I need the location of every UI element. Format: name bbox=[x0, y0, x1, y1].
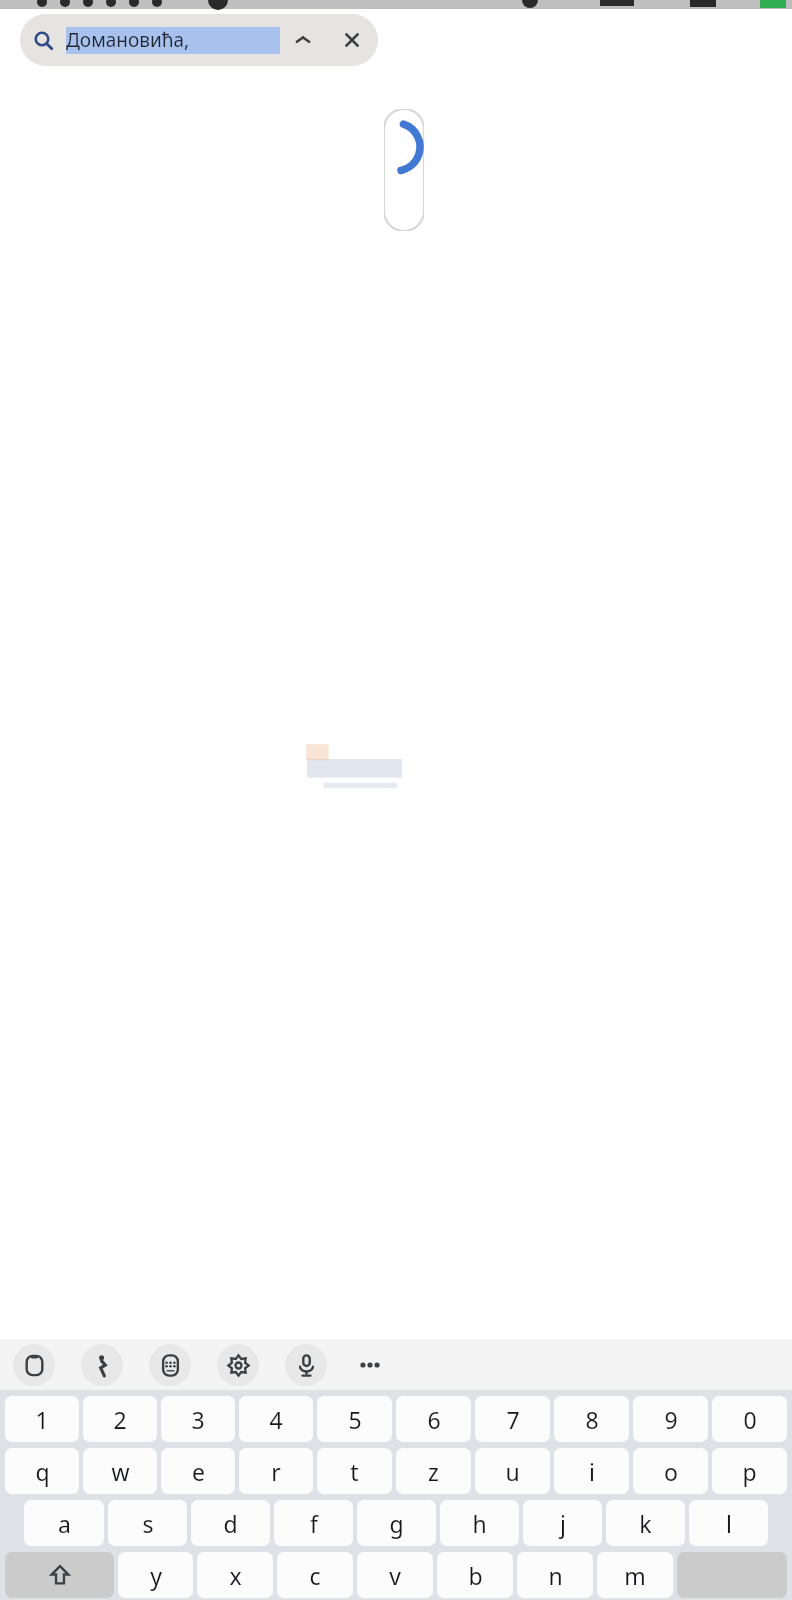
button[interactable]: j bbox=[523, 1500, 602, 1546]
button[interactable]: Search bbox=[20, 14, 378, 66]
staticText: b bbox=[468, 1560, 483, 1591]
button[interactable]: n bbox=[517, 1552, 593, 1598]
button[interactable]: 6 bbox=[396, 1396, 471, 1442]
button[interactable]: i bbox=[554, 1448, 629, 1494]
staticText: Домановића, Kragujevac bbox=[66, 27, 280, 54]
staticText: l bbox=[726, 1508, 732, 1539]
staticText: c bbox=[309, 1560, 321, 1591]
staticText: f bbox=[310, 1508, 318, 1539]
staticText: j bbox=[560, 1508, 566, 1539]
button[interactable]: z bbox=[396, 1448, 471, 1494]
button[interactable]: c bbox=[277, 1552, 353, 1598]
button[interactable]: Text editing bbox=[149, 1344, 191, 1386]
button[interactable]: h bbox=[440, 1500, 519, 1546]
button[interactable]: Settings bbox=[217, 1344, 259, 1386]
staticText: 3 bbox=[191, 1404, 205, 1435]
button[interactable]: 0 bbox=[712, 1396, 787, 1442]
button[interactable]: o bbox=[633, 1448, 708, 1494]
staticText: k bbox=[639, 1508, 652, 1539]
button[interactable]: q bbox=[5, 1448, 79, 1494]
button[interactable]: b bbox=[437, 1552, 513, 1598]
staticText: x bbox=[229, 1560, 242, 1591]
button[interactable]: r bbox=[239, 1448, 313, 1494]
button[interactable]: w bbox=[83, 1448, 157, 1494]
button[interactable]: a bbox=[24, 1500, 104, 1546]
staticText: 0 bbox=[743, 1404, 757, 1435]
button[interactable]: m bbox=[597, 1552, 673, 1598]
staticText: w bbox=[111, 1456, 130, 1487]
staticText: p bbox=[742, 1456, 757, 1487]
staticText: s bbox=[142, 1508, 154, 1539]
button[interactable]: y bbox=[118, 1552, 193, 1598]
staticText: n bbox=[548, 1560, 563, 1591]
staticText: e bbox=[192, 1456, 205, 1487]
staticText: 8 bbox=[585, 1404, 599, 1435]
staticText: h bbox=[472, 1508, 487, 1539]
button[interactable]: x bbox=[197, 1552, 273, 1598]
button[interactable]: Shift bbox=[5, 1552, 114, 1598]
button[interactable]: Clear bbox=[326, 14, 378, 66]
button[interactable]: Stickers bbox=[81, 1344, 123, 1386]
button[interactable]: 1 bbox=[5, 1396, 79, 1442]
staticText: 7 bbox=[506, 1404, 520, 1435]
button[interactable]: v bbox=[357, 1552, 433, 1598]
staticText: 1 bbox=[35, 1404, 49, 1435]
staticText: m bbox=[624, 1560, 646, 1591]
button[interactable]: p bbox=[712, 1448, 787, 1494]
button[interactable]: f bbox=[274, 1500, 353, 1546]
button[interactable]: 4 bbox=[239, 1396, 313, 1442]
button[interactable]: 7 bbox=[475, 1396, 550, 1442]
staticText: o bbox=[664, 1456, 678, 1487]
other: Search bbox=[20, 14, 66, 66]
staticText: g bbox=[389, 1508, 404, 1539]
button[interactable]: Voice input bbox=[285, 1344, 327, 1386]
button[interactable]: 3 bbox=[161, 1396, 235, 1442]
button[interactable]: 2 bbox=[83, 1396, 157, 1442]
staticText: r bbox=[271, 1456, 281, 1487]
staticText: y bbox=[150, 1560, 162, 1591]
button[interactable]: l bbox=[689, 1500, 768, 1546]
button[interactable]: k bbox=[606, 1500, 685, 1546]
staticText: 6 bbox=[427, 1404, 441, 1435]
button[interactable]: s bbox=[108, 1500, 187, 1546]
button[interactable]: t bbox=[317, 1448, 392, 1494]
button[interactable]: d bbox=[191, 1500, 270, 1546]
button[interactable]: 5 bbox=[317, 1396, 392, 1442]
staticText: z bbox=[428, 1456, 439, 1487]
staticText: 5 bbox=[348, 1404, 362, 1435]
button[interactable]: 8 bbox=[554, 1396, 629, 1442]
staticText: d bbox=[223, 1508, 238, 1539]
button[interactable]: Collapse bbox=[280, 14, 326, 66]
staticText: q bbox=[35, 1456, 50, 1487]
button[interactable]: g bbox=[357, 1500, 436, 1546]
button[interactable]: e bbox=[161, 1448, 235, 1494]
button[interactable]: Clipboard bbox=[13, 1344, 55, 1386]
staticText: t bbox=[350, 1456, 359, 1487]
staticText: u bbox=[505, 1456, 520, 1487]
staticText: v bbox=[389, 1560, 401, 1591]
staticText: i bbox=[589, 1456, 595, 1487]
staticText: 4 bbox=[269, 1404, 283, 1435]
staticText: 9 bbox=[664, 1404, 678, 1435]
button[interactable]: More options bbox=[349, 1344, 391, 1386]
button[interactable]: 9 bbox=[633, 1396, 708, 1442]
staticText: 2 bbox=[113, 1404, 127, 1435]
button[interactable]: u bbox=[475, 1448, 550, 1494]
staticText: a bbox=[58, 1508, 71, 1539]
